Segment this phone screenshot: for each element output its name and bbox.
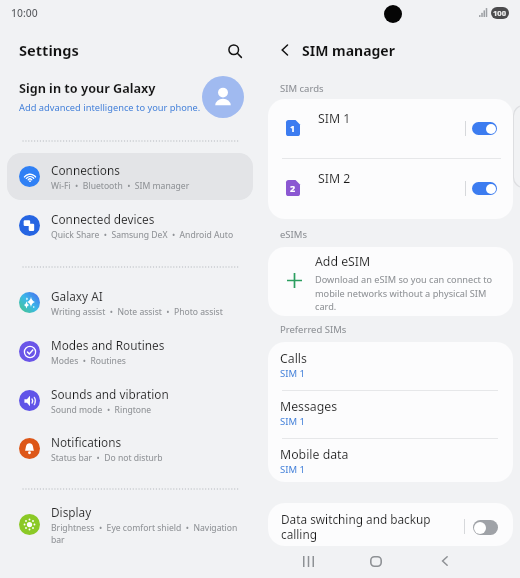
button[interactable]: Connected devices: [7, 202, 253, 249]
staticText: eSIMs: [280, 228, 307, 241]
staticText: Display: [51, 504, 92, 520]
staticText: Wi-Fi • Bluetooth • SIM manager: [51, 180, 190, 192]
staticText: Quick Share • Samsung DeX • Android Auto: [51, 229, 234, 241]
staticText: Calls: [280, 350, 307, 367]
button[interactable]: Back: [432, 548, 458, 574]
button[interactable]: Add eSIM: [268, 247, 513, 316]
staticText: Brightness • Eye comfort shield • Naviga…: [51, 522, 245, 546]
staticText: Settings: [19, 40, 79, 60]
staticText: Status bar • Do not disturb: [51, 452, 163, 464]
button[interactable]: Sounds and vibration: [7, 377, 253, 424]
staticText: SIM 1: [280, 367, 305, 380]
button[interactable]: 1: [268, 99, 513, 159]
staticText: SIM cards: [280, 82, 324, 95]
staticText: Sign in to your Galaxy: [19, 80, 156, 97]
staticText: 10:00: [11, 6, 38, 20]
staticText: SIM 1: [280, 415, 305, 428]
staticText: Notifications: [51, 434, 122, 450]
staticText: SIM 1: [318, 110, 351, 127]
staticText: 1: [290, 122, 296, 134]
staticText: Mobile data: [280, 446, 349, 463]
staticText: Modes and Routines: [51, 337, 165, 353]
button[interactable]: Connections: [7, 153, 253, 200]
button[interactable]: Calls: [268, 342, 513, 390]
staticText: Connected devices: [51, 211, 155, 227]
button[interactable]: 2: [268, 159, 513, 219]
staticText: Add eSIM: [315, 253, 371, 270]
staticText: Galaxy AI: [51, 288, 103, 304]
staticText: SIM 2: [318, 170, 351, 187]
staticText: SIM manager: [302, 41, 395, 60]
button[interactable]: Messages: [268, 390, 513, 438]
button[interactable]: Data switching and backup calling: [268, 503, 513, 546]
staticText: Writing assist • Note assist • Photo ass…: [51, 306, 223, 318]
staticText: Download an eSIM so you can connect to m…: [315, 273, 497, 312]
staticText: Preferred SIMs: [280, 323, 347, 336]
staticText: Sounds and vibration: [51, 386, 169, 402]
staticText: 100: [493, 8, 507, 18]
staticText: SIM 1: [280, 463, 305, 476]
staticText: Modes • Routines: [51, 355, 126, 367]
button[interactable]: Galaxy AI: [7, 279, 253, 326]
staticText: Messages: [280, 398, 338, 415]
button[interactable]: Mobile data: [268, 438, 513, 482]
button[interactable]: Sign in to your Galaxy: [6, 72, 254, 122]
button[interactable]: Toggle on: [472, 122, 497, 135]
button[interactable]: Search: [220, 36, 250, 66]
staticText: Data switching and backup calling: [281, 511, 441, 543]
button[interactable]: Home: [363, 548, 389, 574]
button[interactable]: Recents: [295, 548, 321, 574]
button[interactable]: Toggle off: [473, 520, 498, 535]
button[interactable]: Toggle on: [472, 182, 497, 195]
button[interactable]: Notifications: [7, 425, 253, 472]
staticText: Add advanced intelligence to your phone.: [19, 101, 201, 114]
staticText: Connections: [51, 162, 120, 178]
button[interactable]: Modes and Routines: [7, 328, 253, 375]
staticText: Sound mode • Ringtone: [51, 404, 152, 416]
staticText: 2: [290, 182, 296, 194]
button[interactable]: Display: [7, 501, 253, 548]
button[interactable]: Back: [272, 37, 298, 63]
